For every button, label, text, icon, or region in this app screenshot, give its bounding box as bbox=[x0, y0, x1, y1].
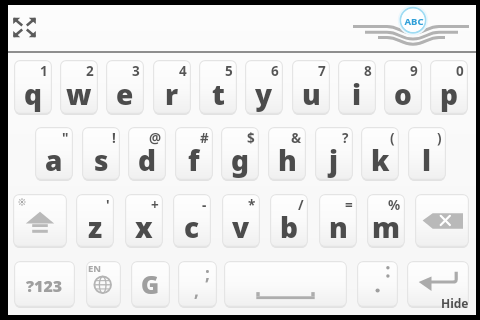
button[interactable]: Enter bbox=[407, 261, 469, 308]
button[interactable]: Period and colon bbox=[357, 261, 398, 308]
staticText: 7 bbox=[318, 62, 326, 80]
button[interactable]: ! bbox=[82, 127, 120, 181]
staticText: e bbox=[116, 75, 134, 113]
staticText: o bbox=[394, 75, 412, 113]
staticText: w bbox=[66, 75, 92, 113]
button[interactable]: 1 bbox=[14, 60, 52, 115]
button[interactable]: ' bbox=[76, 194, 114, 248]
staticText: G bbox=[141, 268, 160, 301]
button[interactable]: 3 bbox=[106, 60, 144, 115]
staticText: 9 bbox=[410, 62, 418, 80]
staticText: 8 bbox=[364, 62, 372, 80]
button[interactable]: ? bbox=[315, 127, 353, 181]
staticText: ; bbox=[205, 262, 210, 285]
staticText: 4 bbox=[179, 62, 187, 80]
staticText: 1 bbox=[40, 62, 48, 80]
button[interactable]: Backspace bbox=[415, 194, 469, 248]
staticText: 6 bbox=[271, 62, 279, 80]
button[interactable]: Switch input language bbox=[86, 261, 121, 308]
staticText: l bbox=[422, 141, 432, 179]
button[interactable]: 4 bbox=[153, 60, 191, 115]
staticText: k bbox=[371, 141, 390, 179]
staticText: p bbox=[440, 75, 459, 113]
staticText: a bbox=[45, 141, 63, 179]
staticText: ABC bbox=[394, 15, 434, 28]
button[interactable]: 6 bbox=[245, 60, 283, 115]
staticText: d bbox=[138, 141, 157, 179]
staticText: % bbox=[388, 196, 401, 214]
staticText: x bbox=[135, 208, 153, 246]
staticText: r bbox=[165, 75, 179, 113]
staticText: y bbox=[255, 75, 273, 113]
staticText: ? bbox=[342, 129, 349, 147]
button[interactable]: # bbox=[175, 127, 213, 181]
staticText: v bbox=[232, 208, 250, 246]
staticText: * bbox=[248, 196, 256, 214]
staticText: u bbox=[302, 75, 321, 113]
button[interactable]: ) bbox=[408, 127, 446, 181]
staticText: ) bbox=[437, 129, 442, 147]
button[interactable]: 8 bbox=[338, 60, 376, 115]
button[interactable]: $ bbox=[221, 127, 259, 181]
staticText: @ bbox=[149, 129, 162, 147]
staticText: j bbox=[329, 141, 339, 179]
button[interactable]: * bbox=[222, 194, 260, 248]
staticText: z bbox=[88, 208, 103, 246]
button[interactable]: G bbox=[131, 261, 170, 308]
button[interactable]: = bbox=[319, 194, 357, 248]
button[interactable]: Resize keyboard bbox=[8, 9, 45, 47]
staticText: 0 bbox=[456, 62, 464, 80]
button[interactable]: 2 bbox=[60, 60, 98, 115]
staticText: m bbox=[372, 208, 401, 246]
button[interactable]: Shift bbox=[13, 194, 67, 248]
staticText: n bbox=[329, 208, 348, 246]
staticText: , bbox=[194, 279, 199, 302]
staticText: 3 bbox=[132, 62, 140, 80]
staticText: " bbox=[62, 129, 69, 147]
button[interactable]: " bbox=[35, 127, 73, 181]
staticText: + bbox=[151, 196, 159, 214]
button[interactable]: / bbox=[270, 194, 308, 248]
staticText: ?123 bbox=[26, 275, 63, 297]
staticText: f bbox=[188, 141, 200, 179]
staticText: = bbox=[345, 196, 353, 214]
button[interactable]: - bbox=[173, 194, 211, 248]
staticText: - bbox=[202, 196, 207, 214]
staticText: c bbox=[184, 208, 200, 246]
staticText: 2 bbox=[86, 62, 94, 80]
staticText: EN bbox=[88, 262, 102, 275]
button[interactable]: 0 bbox=[430, 60, 468, 115]
staticText: g bbox=[231, 141, 250, 179]
staticText: s bbox=[94, 141, 109, 179]
button[interactable]: ?123 bbox=[14, 261, 75, 308]
button[interactable]: % bbox=[367, 194, 405, 248]
button[interactable]: + bbox=[125, 194, 163, 248]
button[interactable]: 9 bbox=[384, 60, 422, 115]
button[interactable]: ( bbox=[361, 127, 399, 181]
staticText: # bbox=[200, 129, 209, 147]
staticText: q bbox=[24, 75, 43, 113]
button[interactable]: 7 bbox=[292, 60, 330, 115]
staticText: t bbox=[212, 75, 225, 113]
button[interactable]: @ bbox=[128, 127, 166, 181]
staticText: Hide bbox=[441, 295, 469, 311]
staticText: ! bbox=[112, 129, 116, 147]
button[interactable]: & bbox=[268, 127, 306, 181]
staticText: h bbox=[278, 141, 297, 179]
staticText: i bbox=[352, 75, 362, 113]
staticText: & bbox=[291, 129, 302, 147]
staticText: b bbox=[280, 208, 299, 246]
staticText: $ bbox=[247, 129, 255, 147]
staticText: 5 bbox=[225, 62, 233, 80]
button[interactable]: 5 bbox=[199, 60, 237, 115]
button[interactable]: Semicolon and comma bbox=[178, 261, 217, 308]
staticText: ' bbox=[106, 196, 110, 214]
button[interactable]: Space bbox=[224, 261, 347, 308]
staticText: / bbox=[298, 196, 304, 214]
staticText: ( bbox=[390, 129, 395, 147]
